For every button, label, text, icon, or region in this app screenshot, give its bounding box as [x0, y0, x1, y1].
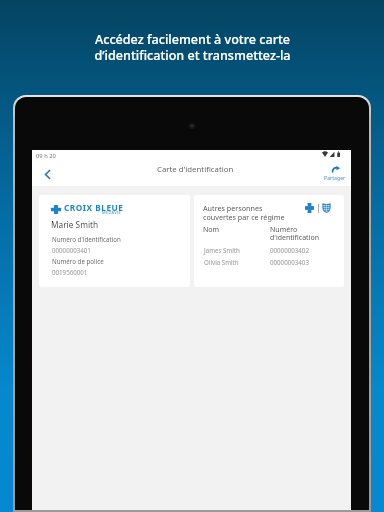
staticText: Numéro d'identification: [270, 225, 319, 242]
staticText: MEDAVIE: [102, 210, 122, 215]
button[interactable]: Back: [38, 165, 56, 183]
staticText: 00000003401: [52, 246, 91, 254]
staticText: Accédez facilement à votre carte d’ident…: [94, 31, 291, 64]
staticText: James Smith: [204, 246, 240, 254]
staticText: Numéro de police: [52, 257, 104, 265]
staticText: Marie Smith: [51, 219, 99, 230]
staticText: 00000003402: [270, 246, 309, 254]
staticText: 00000003403: [270, 258, 309, 266]
button[interactable]: Autres personnes couvertes par ce régime: [194, 195, 344, 287]
staticText: Olivia Smith: [204, 258, 239, 266]
staticText: 0019560001: [52, 268, 88, 276]
staticText: Autres personnes couvertes par ce régime: [203, 203, 285, 222]
staticText: Partager: [324, 174, 346, 181]
staticText: 09 h 20: [36, 152, 56, 160]
button[interactable]: CROIX BLEUE: [39, 195, 190, 287]
staticText: Numéro d'identification: [52, 235, 121, 243]
staticText: CROIX BLEUE: [64, 202, 124, 213]
button[interactable]: Partager: [323, 166, 347, 181]
staticText: Carte d'identification: [157, 164, 234, 175]
staticText: Nom: [203, 225, 220, 235]
